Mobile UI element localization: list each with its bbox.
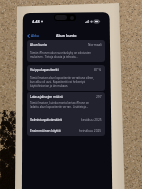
button[interactable]: Akun kunto (27, 43, 105, 47)
staticText: Huippukapasiteetti (30, 68, 59, 72)
staticText: Valmistuspäivämäärä (30, 118, 63, 122)
staticText: Tämä ilmaisee akun kapasiteetin verrattu… (30, 76, 94, 88)
staticText: Tämän iPhonen akun suorituskyky on odotu… (30, 51, 91, 59)
staticText: Latausjaksojen määrä (30, 95, 63, 99)
button[interactable]: Huippukapasiteetti (27, 68, 105, 72)
button[interactable]: Valmistuspäivämäärä (27, 118, 105, 122)
staticText: Akun kunto (30, 43, 48, 47)
button[interactable]: Latausjaksojen määrä (27, 95, 105, 99)
staticText: 4.48 (32, 19, 40, 24)
button[interactable]: Ensimmäinen käyttö (27, 129, 105, 133)
staticText: Akku (31, 33, 39, 38)
staticText: Akun kunto (56, 33, 77, 38)
staticText: Normaali (88, 43, 102, 47)
button[interactable]: Akku (26, 32, 40, 39)
staticText: heinäkuu 2025 (79, 129, 102, 133)
staticText: Ensimmäinen käyttö (30, 129, 61, 133)
staticText: kesäkuu 2025 (81, 118, 102, 122)
staticText: 297 (96, 95, 102, 99)
staticText: Tämä ilmaisee, kuinka monta kertaa iPhon… (30, 101, 89, 109)
staticText: 87 % (94, 68, 102, 72)
